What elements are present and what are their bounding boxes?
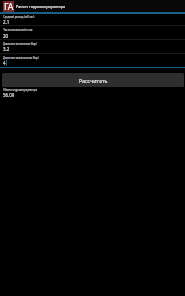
staticText: 3.2 (3, 46, 10, 52)
staticText: ГА (4, 1, 14, 12)
staticText: 4 (3, 60, 6, 66)
staticText: 20 (3, 33, 9, 39)
staticText: Число включений в час (3, 28, 33, 32)
button[interactable] (0, 12, 185, 26)
button[interactable] (0, 26, 185, 40)
staticText: Расчет гидроаккумулятора (16, 4, 66, 9)
staticText: Давление выключения (бар) (3, 56, 39, 60)
staticText: 2.1 (3, 19, 10, 25)
staticText: Объем гидроаккумулятора (3, 88, 38, 92)
staticText: 56.09 (3, 92, 15, 98)
button[interactable] (0, 54, 185, 68)
button[interactable] (0, 40, 185, 54)
other: App icon (3, 1, 14, 12)
staticText: Рассчитать (79, 77, 108, 84)
staticText: Средний расход (м3/час) (3, 15, 35, 19)
button[interactable]: Рассчитать (2, 73, 184, 87)
staticText: Давление включения (бар) (3, 42, 37, 46)
button[interactable]: App icon (0, 0, 185, 12)
